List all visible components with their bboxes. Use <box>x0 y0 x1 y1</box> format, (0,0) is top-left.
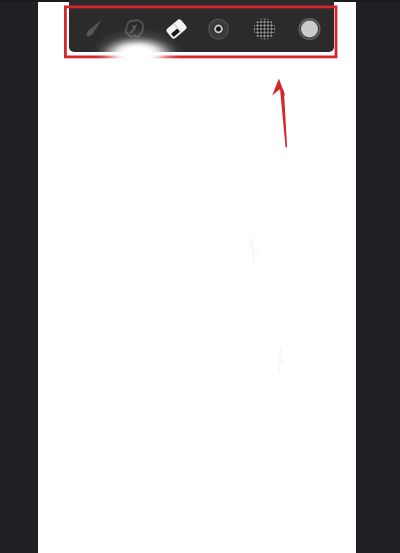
button[interactable]: Brush <box>73 0 114 52</box>
button[interactable]: Smudge <box>114 0 155 52</box>
button[interactable]: Eraser <box>156 0 197 52</box>
button[interactable]: Opacity <box>244 0 285 52</box>
button[interactable]: Colour <box>289 0 330 52</box>
button[interactable]: Brush size <box>198 0 239 52</box>
